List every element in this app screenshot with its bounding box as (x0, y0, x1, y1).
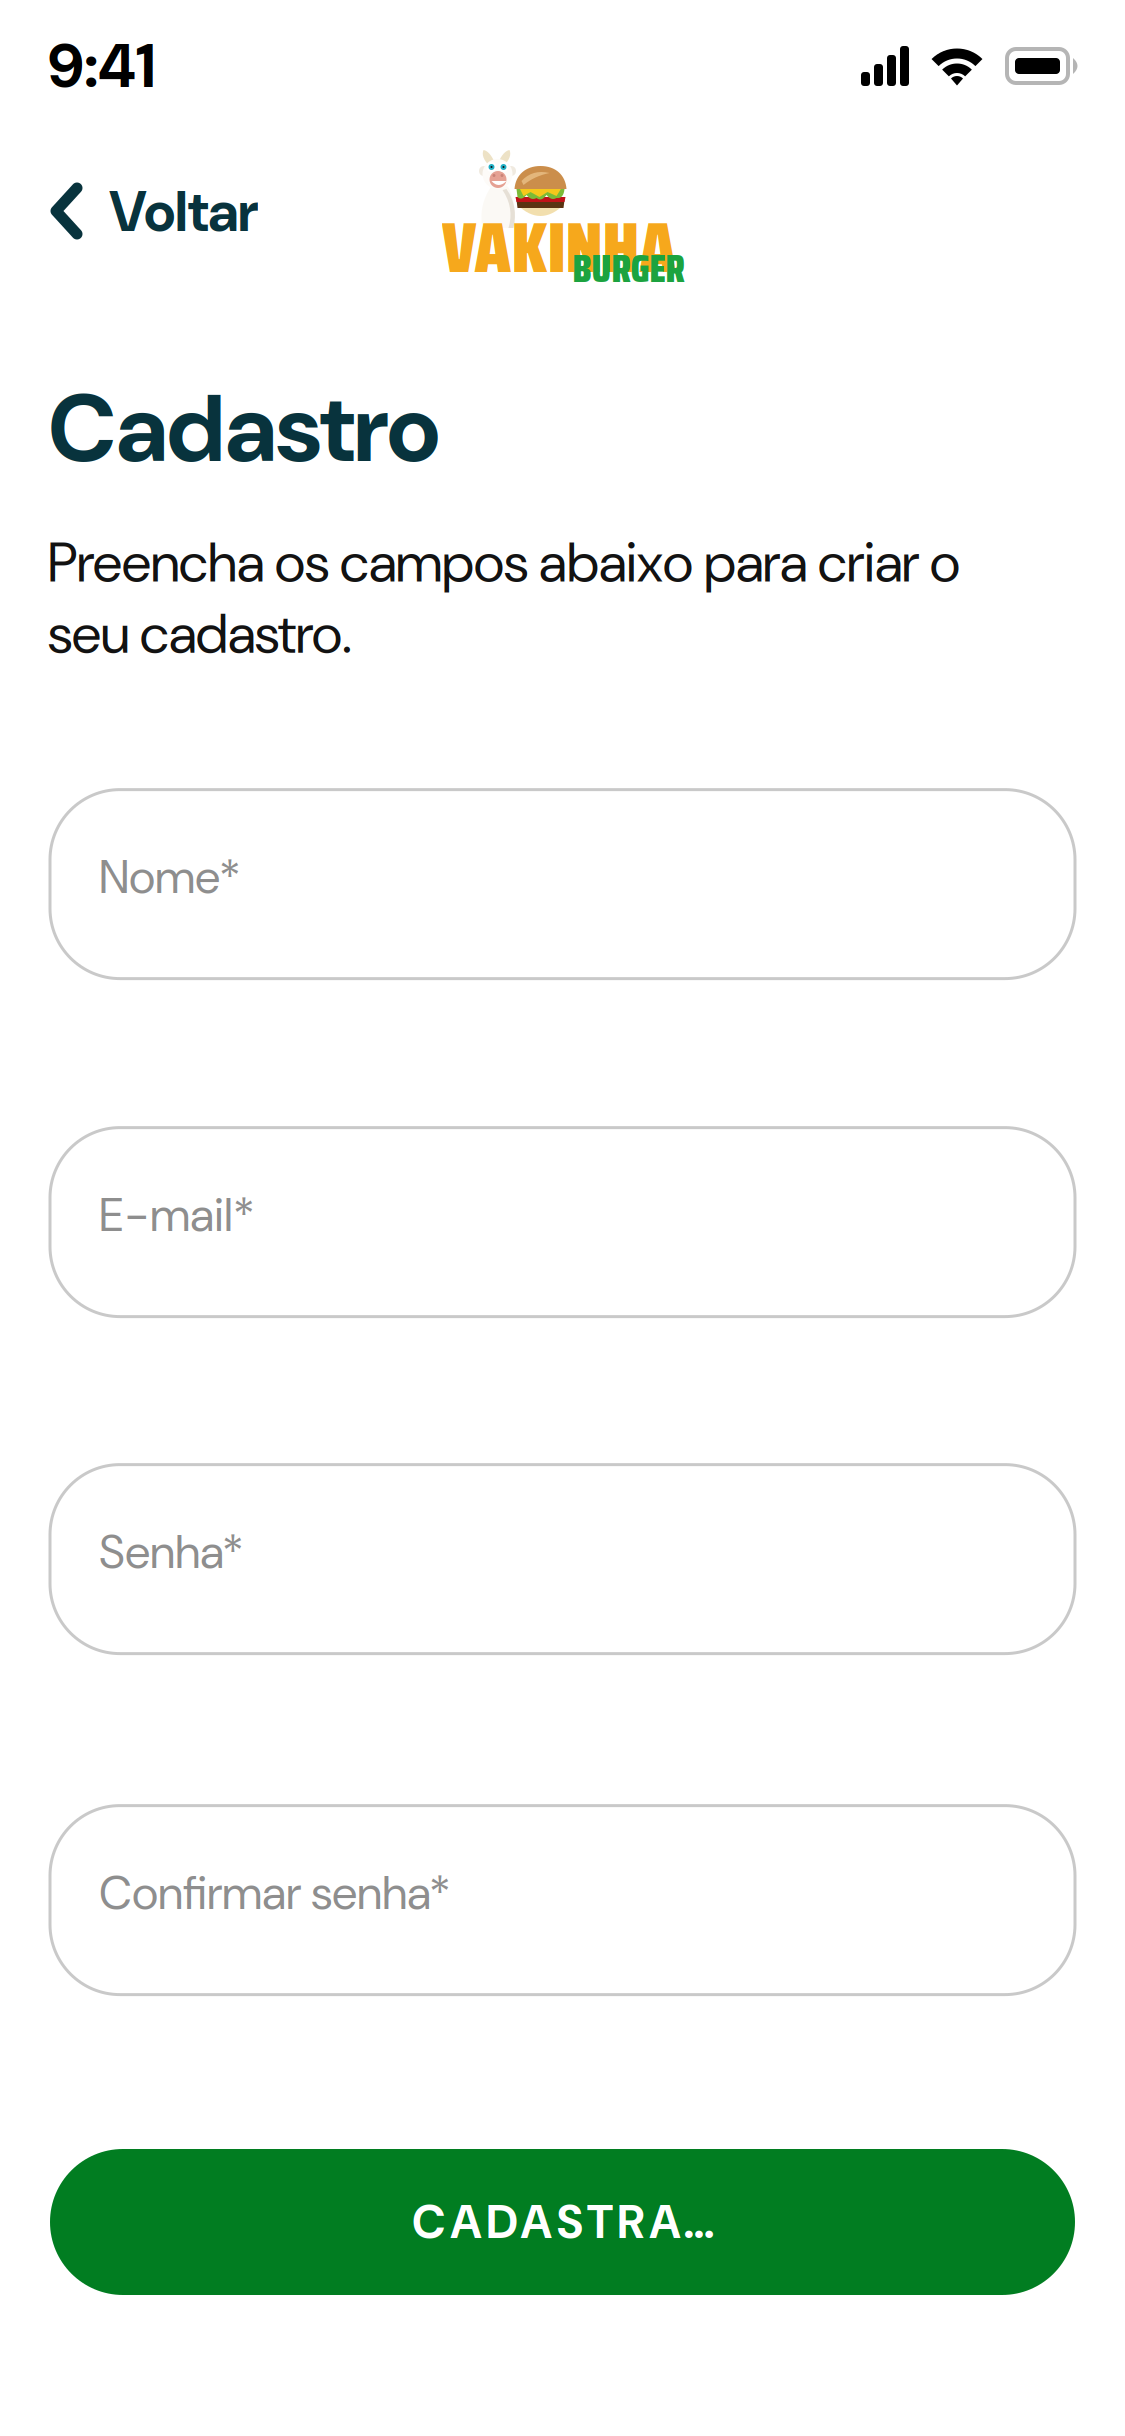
button[interactable]: Nome* (50, 790, 1075, 979)
button[interactable]: E-mail* (50, 1128, 1075, 1317)
staticText: CADASTRAR (412, 2192, 713, 2252)
staticText: VAKINHA (441, 192, 676, 303)
staticText: 9:41 (48, 26, 155, 106)
staticText: Nome* (99, 847, 241, 907)
staticText: Preencha os campos abaixo para criar o s… (48, 527, 960, 670)
staticText: Cadastro (48, 367, 440, 490)
button[interactable]: Senha* (50, 1465, 1075, 1654)
button[interactable]: Confirmar senha* (50, 1806, 1075, 1995)
staticText: Confirmar senha* (99, 1863, 451, 1923)
button[interactable]: Voltar (0, 161, 258, 270)
staticText: E-mail* (99, 1185, 255, 1245)
staticText: Voltar (109, 175, 258, 248)
button[interactable]: CADASTRAR (50, 2149, 1075, 2295)
staticText: BURGER (572, 238, 684, 299)
staticText: Senha* (99, 1522, 244, 1582)
